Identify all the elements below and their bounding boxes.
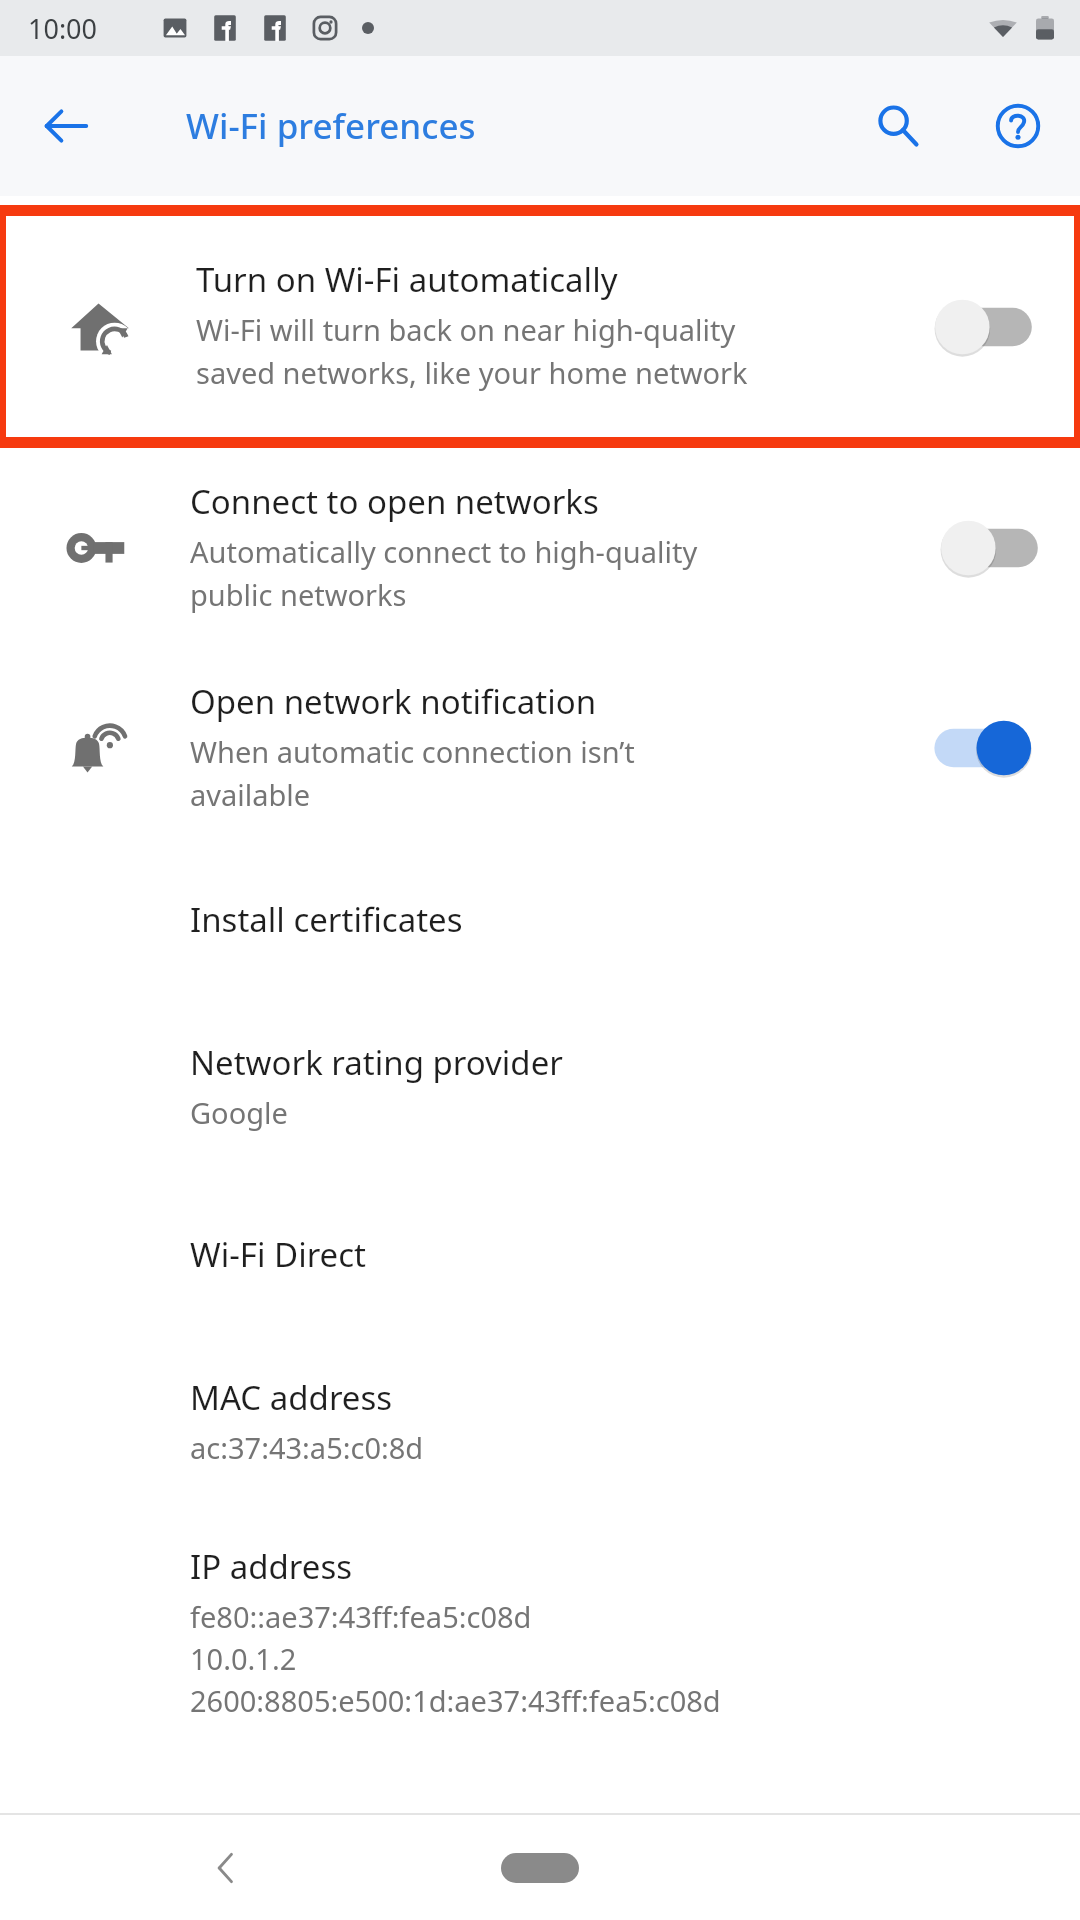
button[interactable]: Back: [24, 84, 108, 168]
button[interactable]: Open network notification: [0, 648, 1080, 848]
staticText: Turn on Wi-Fi automatically: [196, 257, 618, 302]
staticText: available: [190, 775, 311, 814]
button[interactable]: MAC address: [0, 1326, 1080, 1518]
staticText: ac:37:43:a5:c0:8d: [190, 1428, 424, 1467]
staticText: IP address: [190, 1544, 353, 1589]
button[interactable]: Network rating provider: [0, 991, 1080, 1183]
staticText: Install certificates: [190, 897, 463, 942]
staticText: Google: [190, 1093, 288, 1132]
button[interactable]: Wi-Fi Direct: [0, 1183, 1080, 1326]
button[interactable]: Turn on Wi-Fi automatically: [6, 216, 1074, 437]
button[interactable]: IP address: [0, 1518, 1080, 1748]
staticText: Open network notification: [190, 679, 597, 724]
staticText: Wi-Fi Direct: [190, 1232, 366, 1277]
button[interactable]: Help: [976, 84, 1060, 168]
staticText: public networks: [190, 575, 407, 614]
button[interactable]: Connect to open networks: [0, 448, 1080, 648]
staticText: 2600:8805:e500:1d:ae37:43ff:fea5:c08d: [190, 1681, 721, 1720]
button[interactable]: Home: [470, 1833, 610, 1903]
staticText: MAC address: [190, 1375, 393, 1420]
staticText: Wi-Fi will turn back on near high-qualit…: [196, 310, 736, 349]
staticText: 10.0.1.2: [190, 1639, 297, 1678]
button[interactable]: Back: [186, 1828, 266, 1908]
staticText: 10:00: [28, 10, 98, 47]
staticText: When automatic connection isn’t: [190, 732, 635, 771]
staticText: Connect to open networks: [190, 479, 599, 524]
staticText: Wi-Fi preferences: [186, 102, 476, 150]
staticText: fe80::ae37:43ff:fea5:c08d: [190, 1597, 532, 1636]
button[interactable]: Search: [856, 84, 940, 168]
button[interactable]: Install certificates: [0, 848, 1080, 991]
staticText: saved networks, like your home network: [196, 353, 748, 392]
staticText: Automatically connect to high-quality: [190, 532, 698, 571]
staticText: Network rating provider: [190, 1040, 563, 1085]
